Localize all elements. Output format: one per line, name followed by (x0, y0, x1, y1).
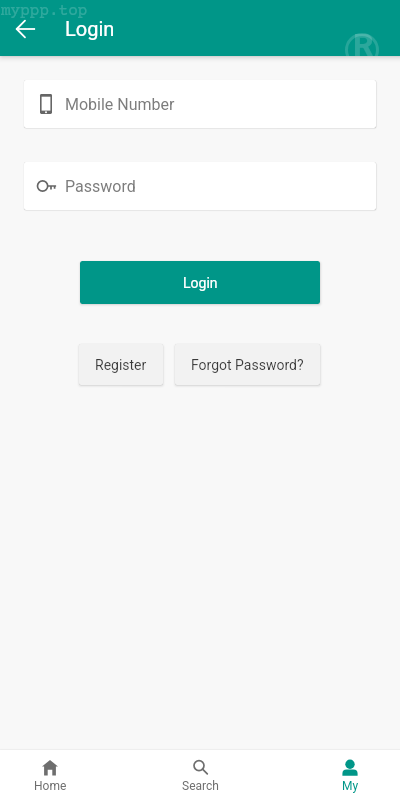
staticText: Password (65, 177, 136, 196)
button[interactable]: Register (79, 344, 163, 385)
button[interactable]: Mobile Number (24, 80, 376, 128)
button[interactable]: Search (150, 750, 250, 801)
staticText: Forgot Password? (191, 357, 304, 373)
staticText: Login (183, 275, 218, 291)
button[interactable]: Password (24, 162, 376, 210)
button[interactable]: Back (2, 5, 50, 53)
staticText: R (353, 26, 374, 56)
button[interactable]: Forgot Password? (175, 344, 320, 385)
button[interactable]: My (300, 750, 400, 801)
staticText: Home (34, 779, 67, 793)
staticText: My (342, 779, 359, 793)
staticText: Login (65, 17, 115, 40)
staticText: Mobile Number (65, 95, 175, 114)
staticText: myppp.top (1, 2, 88, 20)
staticText: Register (95, 357, 147, 373)
button[interactable]: Login (80, 261, 320, 304)
button[interactable]: Home (0, 750, 100, 801)
staticText: Search (182, 779, 219, 793)
